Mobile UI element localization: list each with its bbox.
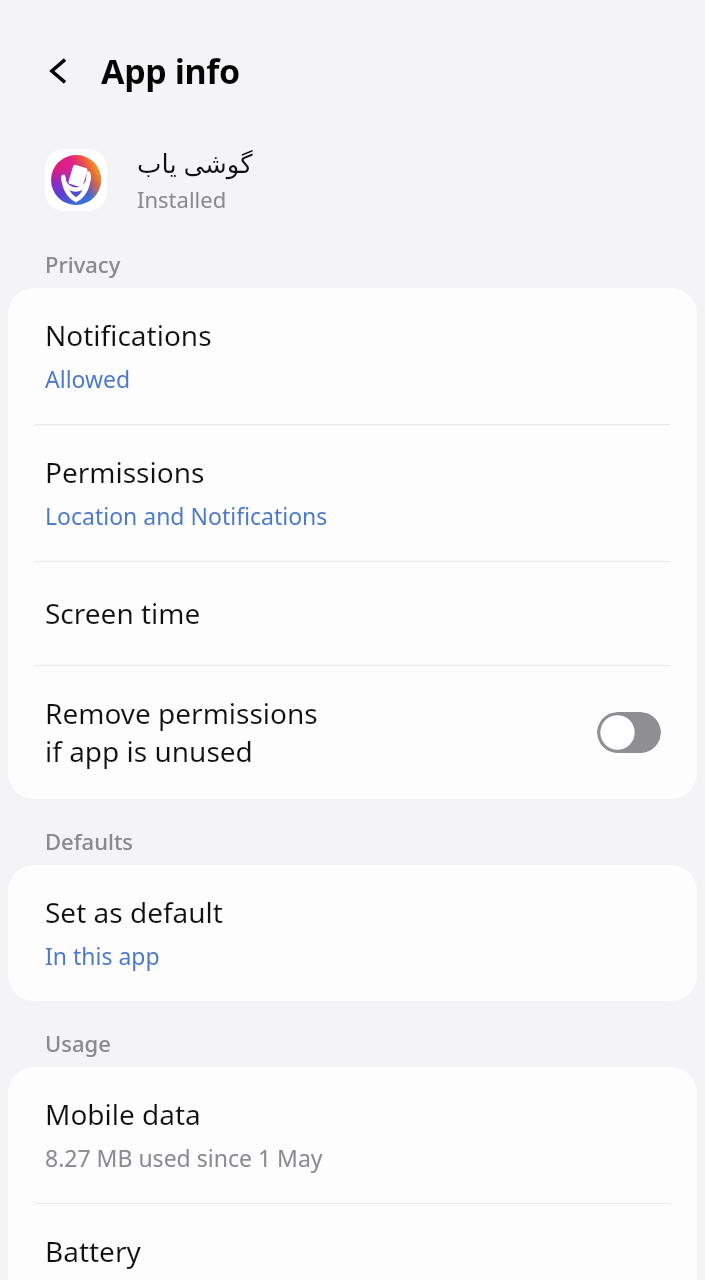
button[interactable]: Screen time [8, 562, 697, 665]
staticText: App info [101, 48, 240, 94]
button[interactable]: گوشی یاب [0, 141, 705, 218]
button[interactable]: Mobile data [8, 1067, 697, 1203]
button[interactable]: Remove permissions if app is unused [8, 666, 697, 799]
staticText: Notifications [45, 316, 212, 354]
button[interactable]: Permissions [8, 425, 697, 561]
staticText: Allowed [45, 363, 131, 394]
staticText: Battery [45, 1232, 141, 1270]
staticText: گوشی یاب [137, 145, 253, 180]
staticText: Privacy [45, 249, 121, 279]
button[interactable]: Battery [8, 1204, 697, 1280]
staticText: Permissions [45, 453, 205, 491]
staticText: Location and Notifications [45, 500, 328, 531]
staticText: Screen time [45, 594, 201, 632]
staticText: Usage [45, 1028, 111, 1058]
staticText: Remove permissions if app is unused [45, 694, 321, 770]
staticText: Mobile data [45, 1095, 201, 1133]
staticText: Installed [137, 184, 227, 214]
button[interactable]: Back [30, 42, 88, 100]
button[interactable]: Set as default [8, 865, 697, 1001]
staticText: 8.27 MB used since 1 May [45, 1142, 323, 1173]
button[interactable]: Remove permissions if app is unused togg… [597, 712, 661, 753]
staticText: In this app [45, 940, 160, 971]
button[interactable]: Notifications [8, 288, 697, 424]
staticText: Set as default [45, 893, 223, 931]
staticText: Defaults [45, 826, 134, 856]
